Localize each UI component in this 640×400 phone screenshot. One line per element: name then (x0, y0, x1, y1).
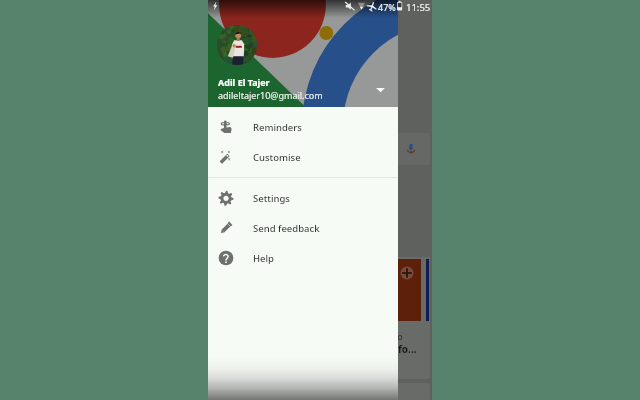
staticText: Help (253, 252, 275, 265)
staticText: fo... (398, 342, 417, 356)
button[interactable]: Voice search (394, 133, 430, 165)
button[interactable]: Customise (208, 142, 398, 172)
staticText: adileltajer10@gmail.com (218, 89, 323, 101)
button[interactable] (397, 322, 430, 379)
staticText: 11:55 (406, 1, 431, 14)
button[interactable]: Switch account (374, 83, 387, 96)
staticText: 47% (378, 1, 396, 13)
button[interactable] (397, 383, 430, 400)
button[interactable]: Settings (208, 183, 398, 213)
staticText: Reminders (253, 121, 302, 134)
staticText: Customise (253, 151, 301, 164)
button[interactable] (397, 257, 430, 322)
button[interactable]: Help (208, 243, 398, 273)
staticText: Settings (253, 192, 290, 205)
button[interactable]: Profile photo (217, 25, 257, 65)
staticText: Adil El Tajer (218, 76, 270, 88)
button[interactable]: Reminders (208, 112, 398, 142)
staticText: Send feedback (253, 222, 320, 235)
button[interactable]: Send feedback (208, 213, 398, 243)
staticText: ● o (387, 330, 403, 342)
